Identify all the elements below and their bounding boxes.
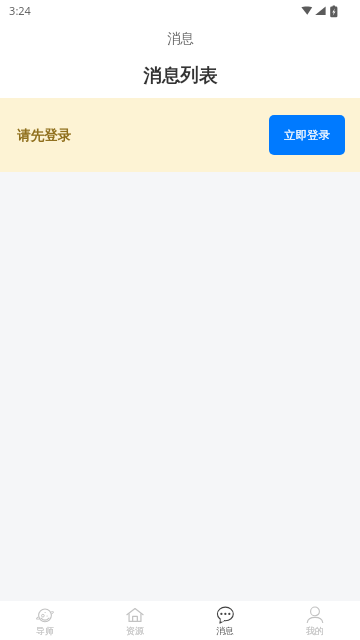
button[interactable]: 导师 xyxy=(0,601,90,640)
staticText: 消息 xyxy=(167,30,194,47)
staticText: 请先登录 xyxy=(17,127,71,144)
button[interactable]: 消息 xyxy=(180,601,270,640)
button[interactable]: 资源 xyxy=(90,601,180,640)
staticText: 立即登录 xyxy=(284,128,330,142)
button[interactable]: 立即登录 xyxy=(269,115,345,155)
staticText: 消息列表 xyxy=(143,64,217,87)
staticText: 导师 xyxy=(36,625,54,636)
staticText: 资源 xyxy=(126,625,144,636)
staticText: 3:24 xyxy=(9,3,31,18)
staticText: 消息 xyxy=(216,625,234,636)
staticText: 我的 xyxy=(306,625,324,636)
button[interactable]: 我的 xyxy=(270,601,360,640)
